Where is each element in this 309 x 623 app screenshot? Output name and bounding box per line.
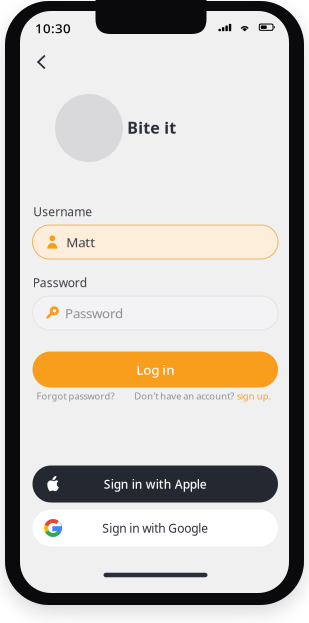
button[interactable]: Sign in with Google — [32, 509, 278, 546]
staticText: Sign in with Apple — [104, 476, 207, 492]
staticText: Matt — [66, 233, 95, 251]
staticText: Password — [65, 304, 123, 322]
staticText: Bite it — [127, 117, 176, 138]
button[interactable]: Back — [26, 47, 56, 77]
staticText: Log in — [136, 361, 174, 378]
staticText: 10:30 — [35, 19, 71, 37]
button[interactable]: Forgot password? — [36, 390, 114, 402]
button[interactable]: sign up. — [237, 390, 272, 402]
staticText: Username — [33, 203, 92, 219]
button[interactable]: Log in — [32, 351, 278, 387]
button[interactable]: Sign in with Apple — [32, 465, 278, 502]
staticText: Forgot password? — [36, 390, 114, 402]
staticText: Password — [33, 274, 87, 290]
staticText: Don't have an account? — [134, 390, 234, 402]
staticText: sign up. — [237, 390, 272, 402]
staticText: Sign in with Google — [102, 520, 208, 536]
